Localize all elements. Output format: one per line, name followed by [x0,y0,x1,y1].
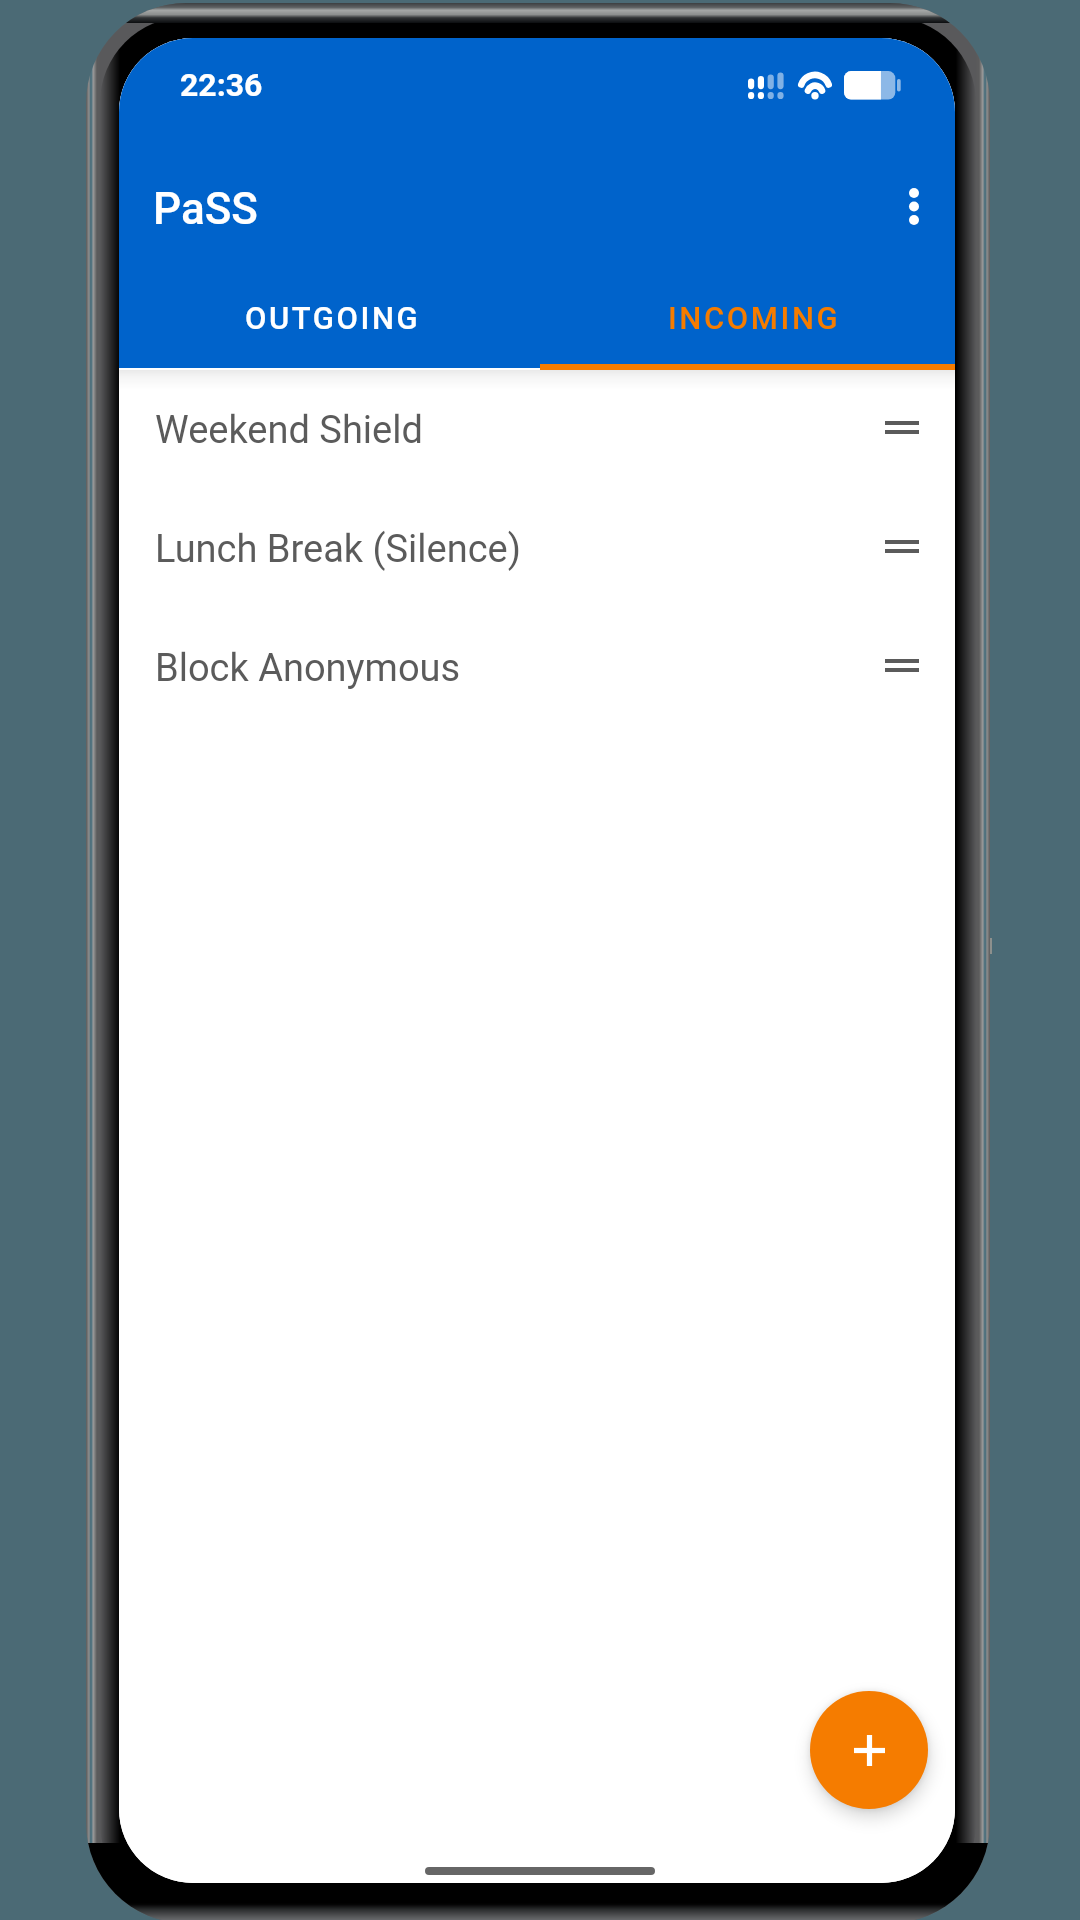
button[interactable]: Weekend Shield [119,368,955,487]
staticText: 22:36 [180,66,263,104]
button[interactable]: INCOMING [540,272,955,363]
button[interactable]: More options [859,158,955,254]
staticText: Block Anonymous [155,646,461,691]
button[interactable]: Block Anonymous [119,606,955,725]
button[interactable]: Add [810,1691,928,1809]
staticText: Weekend Shield [155,408,423,453]
button[interactable]: Lunch Break (Silence) [119,487,955,606]
staticText: OUTGOING [245,300,421,336]
staticText: Lunch Break (Silence) [155,527,521,572]
staticText: PaSS [153,183,258,235]
button[interactable]: OUTGOING [119,272,540,363]
staticText: INCOMING [668,300,841,336]
